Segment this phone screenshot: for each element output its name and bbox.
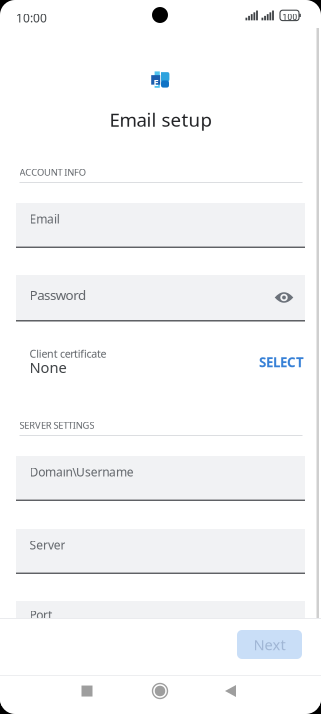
staticText: None: [29, 357, 66, 377]
button[interactable]: Recent apps: [66, 676, 108, 706]
staticText: E: [154, 76, 159, 89]
staticText: Password: [29, 286, 86, 304]
staticText: 100: [282, 12, 297, 22]
button[interactable]: Home: [139, 676, 181, 706]
staticText: Domain\Username: [29, 464, 134, 480]
staticText: Email: [29, 211, 60, 227]
staticText: Next: [253, 635, 285, 654]
staticText: SELECT: [259, 353, 304, 371]
button[interactable]: Back: [210, 676, 252, 706]
staticText: Server: [29, 537, 65, 553]
button[interactable]: SELECT: [242, 347, 304, 377]
staticText: Client certificate: [29, 346, 107, 361]
button[interactable]: Next: [237, 630, 302, 659]
staticText: Port: [29, 607, 52, 623]
staticText: ACCOUNT INFO: [19, 166, 86, 178]
button[interactable]: Show password: [269, 285, 299, 309]
staticText: 10:00: [16, 10, 47, 26]
staticText: Email setup: [109, 107, 211, 132]
staticText: SERVER SETTINGS: [19, 419, 94, 431]
